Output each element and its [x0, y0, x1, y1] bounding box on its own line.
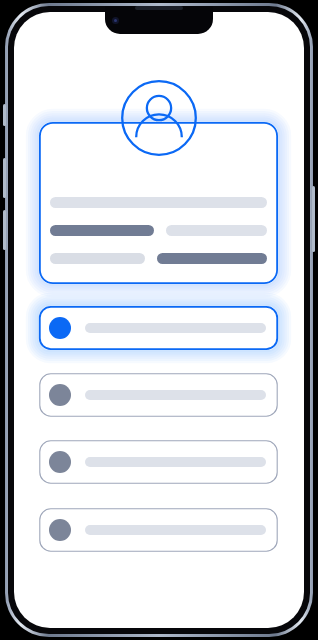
button[interactable]: [39, 306, 278, 350]
button[interactable]: [39, 508, 278, 552]
button[interactable]: [39, 122, 278, 284]
button[interactable]: [39, 373, 278, 417]
button[interactable]: [39, 440, 278, 484]
button[interactable]: Profile avatar: [120, 79, 198, 157]
